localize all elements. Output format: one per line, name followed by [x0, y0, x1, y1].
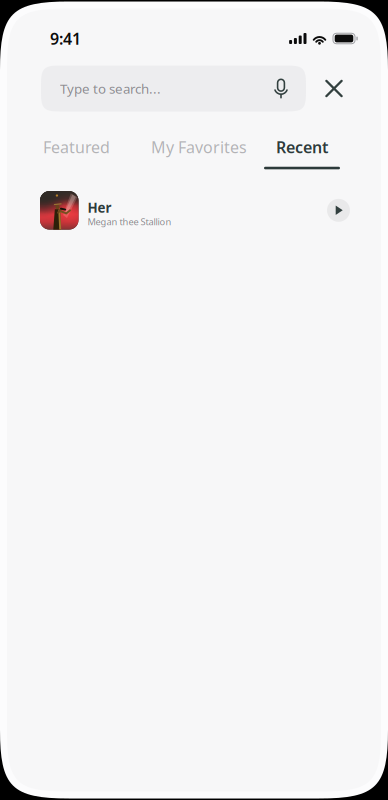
- button[interactable]: Her: [7, 188, 381, 232]
- button[interactable]: Voice search: [266, 65, 296, 111]
- staticText: Type to search...: [60, 80, 161, 97]
- button[interactable]: Recent: [264, 136, 340, 169]
- button[interactable]: My Favorites: [139, 136, 259, 169]
- staticText: Featured: [43, 136, 110, 158]
- staticText: 9:41: [50, 28, 81, 49]
- staticText: Megan thee Stallion: [87, 215, 171, 228]
- button[interactable]: Close search: [314, 65, 354, 111]
- staticText: My Favorites: [151, 136, 247, 158]
- staticText: Recent: [276, 136, 328, 158]
- button[interactable]: Featured: [31, 136, 122, 169]
- staticText: Her: [87, 199, 111, 216]
